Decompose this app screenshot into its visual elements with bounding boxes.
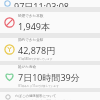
other: 次の項目 <box>4 94 12 100</box>
staticText: ※1箱580円で計算しています <box>18 57 53 61</box>
button[interactable]: 禁煙できた本数 <box>0 12 100 33</box>
staticText: 7日10時間39分 <box>18 71 80 83</box>
button[interactable]: 次の項目 <box>0 92 100 100</box>
staticText: 禁煙できた本数 <box>18 14 44 19</box>
staticText: 節約できた金額 <box>18 38 44 43</box>
button[interactable]: 延びた寿命 <box>0 65 100 88</box>
button[interactable]: Elapsed time <box>0 0 100 7</box>
other: 節約できた金額 <box>4 44 15 55</box>
button[interactable]: 節約できた金額 <box>0 38 100 61</box>
other: Elapsed time <box>4 0 11 7</box>
staticText: 1,949本 <box>18 20 51 32</box>
staticText: 延びた寿命 <box>18 65 37 70</box>
other: 延びた寿命 <box>4 71 15 82</box>
staticText: 42,878円 <box>18 44 56 56</box>
staticText: ※1本あたり11分で計算しています <box>18 84 59 88</box>
other: 禁煙できた本数 <box>4 17 15 28</box>
staticText: 禁煙を続けると体に良い変化があらわれます <box>15 99 72 100</box>
staticText: たばこの健康被害について <box>15 94 57 98</box>
staticText: 97日11:03:08 <box>14 0 70 7</box>
